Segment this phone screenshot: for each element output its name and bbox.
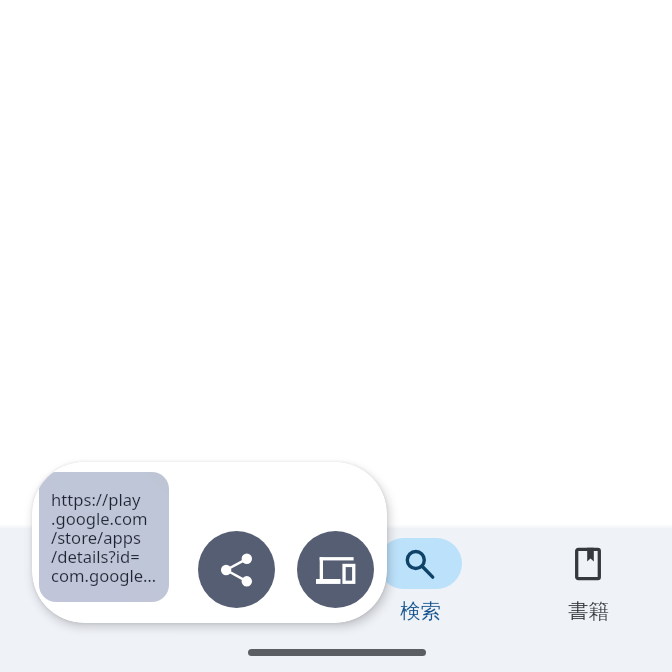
button[interactable]: Share bbox=[198, 531, 275, 608]
button[interactable]: 書籍 bbox=[504, 525, 672, 624]
button[interactable]: Cast to nearby device bbox=[297, 531, 374, 608]
staticText: 書籍 bbox=[568, 598, 609, 624]
button[interactable]: アプリ bbox=[168, 525, 336, 626]
staticText: 検索 bbox=[400, 598, 441, 624]
button[interactable]: 検索 bbox=[336, 525, 504, 624]
staticText: https://play .google.com /store/apps /de… bbox=[51, 488, 157, 587]
button[interactable]: https://play .google.com /store/apps /de… bbox=[39, 472, 169, 602]
button[interactable]: ゲーム bbox=[0, 525, 168, 626]
